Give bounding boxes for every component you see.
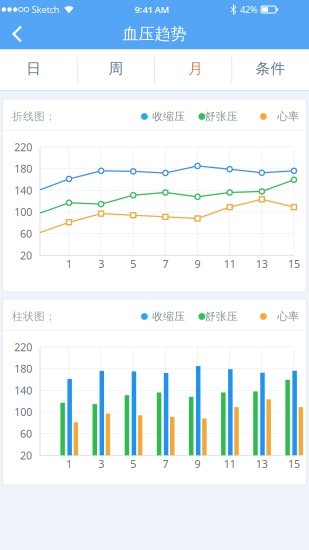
staticText: 140: [14, 383, 32, 397]
staticText: 140: [14, 183, 32, 197]
staticText: 舒张压: [205, 310, 238, 323]
staticText: 7: [162, 257, 168, 271]
staticText: 180: [14, 162, 32, 176]
button[interactable]: 月: [154, 49, 232, 91]
staticText: 心率: [277, 310, 299, 323]
staticText: 60: [20, 427, 32, 441]
staticText: 心率: [277, 110, 299, 123]
staticText: 月: [188, 60, 203, 78]
staticText: 折线图；: [12, 110, 56, 123]
staticText: 15: [288, 257, 300, 271]
staticText: 9:41 AM: [134, 3, 169, 16]
staticText: 5: [130, 257, 136, 271]
staticText: 180: [14, 362, 32, 376]
staticText: 1: [66, 257, 72, 271]
staticText: 220: [14, 140, 32, 154]
staticText: 收缩压: [152, 110, 185, 123]
staticText: 周: [108, 60, 123, 78]
button[interactable]: Back: [0, 19, 44, 49]
staticText: 15: [288, 457, 300, 471]
staticText: 血压趋势: [122, 24, 186, 44]
staticText: 9: [195, 457, 201, 471]
staticText: Sketch: [32, 3, 60, 16]
staticText: 日: [26, 60, 41, 78]
staticText: 100: [14, 205, 32, 219]
staticText: 3: [98, 457, 104, 471]
staticText: 9: [195, 257, 201, 271]
staticText: 13: [256, 257, 268, 271]
staticText: 收缩压: [152, 310, 185, 323]
staticText: 11: [224, 257, 236, 271]
staticText: 60: [20, 227, 32, 241]
staticText: 5: [130, 457, 136, 471]
staticText: 100: [14, 405, 32, 419]
staticText: 柱状图；: [12, 310, 56, 323]
button[interactable]: 条件: [232, 49, 309, 91]
staticText: 舒张压: [205, 110, 238, 123]
staticText: 13: [256, 457, 268, 471]
button[interactable]: 日: [0, 49, 77, 91]
staticText: 42%: [240, 3, 258, 16]
staticText: 220: [14, 340, 32, 354]
button[interactable]: 周: [77, 49, 154, 91]
staticText: 7: [162, 457, 168, 471]
staticText: 20: [20, 248, 32, 262]
staticText: 条件: [255, 60, 285, 78]
staticText: 3: [98, 257, 104, 271]
staticText: 20: [20, 448, 32, 462]
staticText: 1: [66, 457, 72, 471]
staticText: 11: [224, 457, 236, 471]
